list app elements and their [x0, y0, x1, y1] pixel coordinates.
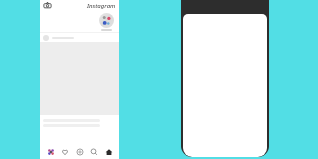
staticText: Instagram [87, 2, 116, 10]
button[interactable]: Profile [76, 148, 84, 156]
button[interactable]: Search [90, 148, 98, 156]
button[interactable]: Activity [61, 148, 69, 156]
button[interactable]: Camera [43, 1, 52, 10]
button[interactable]: Reels [47, 148, 55, 156]
button[interactable]: Instagram [87, 2, 116, 10]
button[interactable] [99, 13, 114, 31]
button[interactable]: Home [105, 148, 113, 156]
button[interactable] [40, 33, 119, 42]
button[interactable] [181, 0, 269, 157]
